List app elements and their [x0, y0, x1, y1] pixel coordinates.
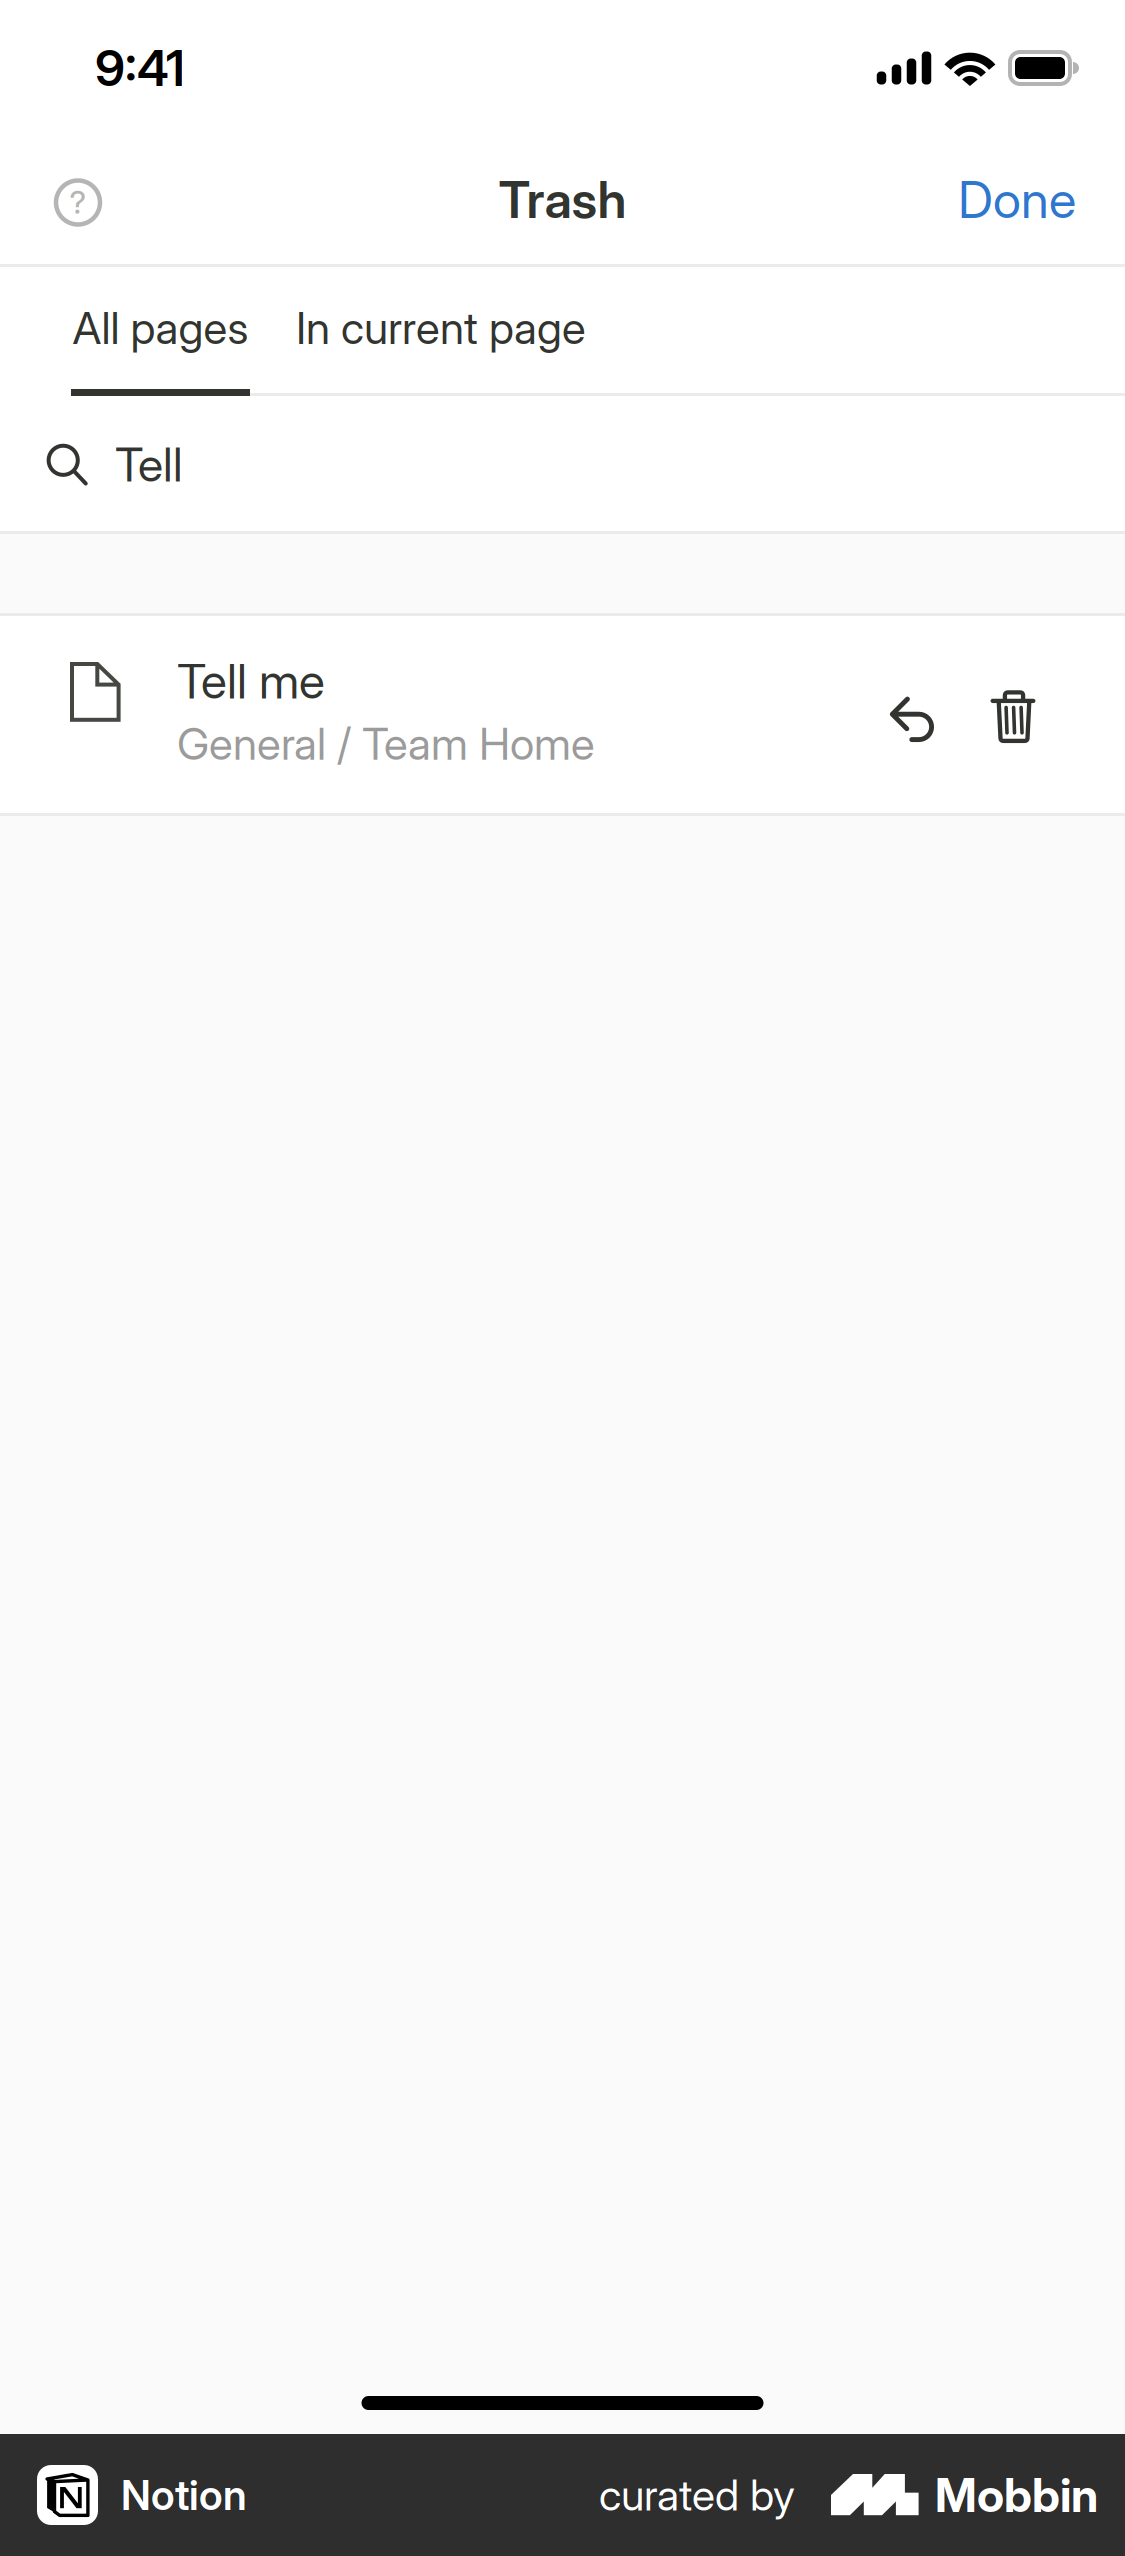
button[interactable]: Done: [940, 147, 1094, 251]
staticText: Done: [958, 169, 1076, 230]
button[interactable]: Tell me: [70, 616, 673, 813]
button[interactable]: Delete permanently: [969, 616, 1057, 812]
staticText: All pages: [72, 301, 248, 355]
staticText: Mobbin: [935, 2467, 1098, 2523]
staticText: curated by: [599, 2469, 795, 2521]
staticText: In current page: [296, 301, 586, 355]
button[interactable]: Tell: [0, 396, 1125, 531]
staticText: General / Team Home: [177, 717, 595, 770]
staticText: Notion: [121, 2470, 247, 2520]
staticText: Tell me: [177, 652, 325, 710]
button[interactable]: Help: [31, 147, 125, 251]
staticText: ?: [69, 184, 86, 221]
button[interactable]: All pages: [0, 267, 250, 389]
button[interactable]: Restore: [856, 616, 969, 812]
staticText: Tell: [115, 436, 183, 493]
staticText: Trash: [498, 169, 626, 230]
staticText: 9:41: [95, 38, 185, 98]
button[interactable]: In current page: [250, 267, 587, 389]
